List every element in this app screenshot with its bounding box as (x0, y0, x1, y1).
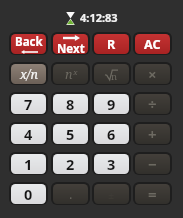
staticText: R (107, 36, 116, 53)
staticText: 8 (66, 94, 75, 114)
staticText: 4:12:83 (80, 10, 118, 25)
staticText: ÷ (148, 94, 157, 114)
staticText: 3 (107, 154, 116, 174)
button[interactable]: 5 (51, 122, 90, 145)
button[interactable]: Back (9, 32, 48, 55)
staticText: ± (108, 187, 115, 202)
staticText: 5 (66, 124, 75, 144)
staticText: 2 (66, 154, 75, 174)
button[interactable]: 8 (51, 92, 90, 115)
staticText: AC (144, 36, 161, 53)
staticText: − (148, 154, 157, 174)
button[interactable]: n to the power x (51, 62, 90, 85)
button[interactable]: 7 (9, 92, 48, 115)
button[interactable]: minus (133, 152, 172, 175)
staticText: + (148, 124, 157, 144)
staticText: 0 (24, 184, 33, 204)
button[interactable]: multiply (133, 62, 172, 85)
staticText: x/n (20, 66, 38, 83)
button[interactable]: change sign (92, 182, 131, 205)
button[interactable]: equals (133, 182, 172, 205)
staticText: 1 (24, 154, 33, 174)
staticText: = (148, 184, 157, 204)
button[interactable]: 6 (92, 122, 131, 145)
button[interactable]: AC (133, 32, 172, 55)
button[interactable]: 3 (92, 152, 131, 175)
button[interactable]: divide (133, 92, 172, 115)
staticText: . (69, 185, 73, 203)
button[interactable]: 2 (51, 152, 90, 175)
staticText: 7 (24, 94, 33, 114)
staticText: 6 (107, 124, 116, 144)
button[interactable]: decimal point (51, 182, 90, 205)
button[interactable]: 1 (9, 152, 48, 175)
staticText: Next (57, 41, 85, 54)
staticText: × (148, 64, 157, 84)
staticText: 4 (24, 124, 33, 144)
staticText: n (111, 70, 118, 83)
staticText: 9 (107, 94, 116, 114)
button[interactable]: n-th root (92, 62, 131, 85)
button[interactable]: 0 (9, 182, 48, 205)
button[interactable]: R (92, 32, 131, 55)
button[interactable]: x over n (9, 62, 48, 85)
button[interactable]: 9 (92, 92, 131, 115)
button[interactable]: plus (133, 122, 172, 145)
button[interactable]: Next (51, 32, 90, 55)
button[interactable]: 4 (9, 122, 48, 145)
staticText: nˣ (65, 66, 77, 83)
staticText: Back (15, 34, 43, 50)
